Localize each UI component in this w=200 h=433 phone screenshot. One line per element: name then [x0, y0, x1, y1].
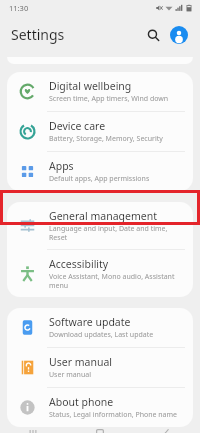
staticText: Screen time, App timers, Wind down: [49, 94, 169, 104]
button[interactable]: Device care: [7, 112, 193, 151]
staticText: Default apps, App permissions: [49, 174, 150, 184]
button[interactable]: User manual: [7, 348, 193, 387]
button[interactable]: Accessibility: [7, 250, 193, 297]
staticText: Device care: [49, 119, 106, 133]
staticText: Download updates, Last update: [49, 330, 154, 340]
button[interactable]: Recent apps: [16, 427, 50, 433]
button[interactable]: Back: [150, 427, 184, 433]
staticText: About phone: [49, 395, 114, 409]
staticText: User manual: [49, 370, 91, 380]
staticText: Battery, Storage, Memory, Security: [49, 134, 163, 144]
button[interactable]: Software update: [7, 308, 193, 347]
staticText: Software update: [49, 315, 131, 329]
staticText: Voice Assistant, Mono audio, Assistant m…: [49, 272, 183, 290]
staticText: Digital wellbeing: [49, 79, 132, 93]
staticText: General management: [49, 209, 157, 223]
staticText: Apps: [49, 159, 74, 173]
staticText: Language and input, Date and time, Reset: [49, 224, 183, 242]
button[interactable]: Apps: [7, 152, 193, 191]
button[interactable]: About phone: [7, 388, 193, 427]
staticText: 11:30: [9, 3, 29, 13]
button[interactable]: General management: [7, 202, 193, 249]
staticText: User manual: [49, 355, 112, 369]
staticText: Settings: [11, 25, 65, 44]
button[interactable]: Home: [83, 427, 117, 433]
button[interactable]: Account: [167, 23, 191, 47]
button[interactable]: Digital wellbeing: [7, 72, 193, 111]
staticText: Status, Legal information, Phone name: [49, 410, 178, 420]
button[interactable]: Search: [141, 23, 165, 47]
staticText: Accessibility: [49, 257, 109, 271]
